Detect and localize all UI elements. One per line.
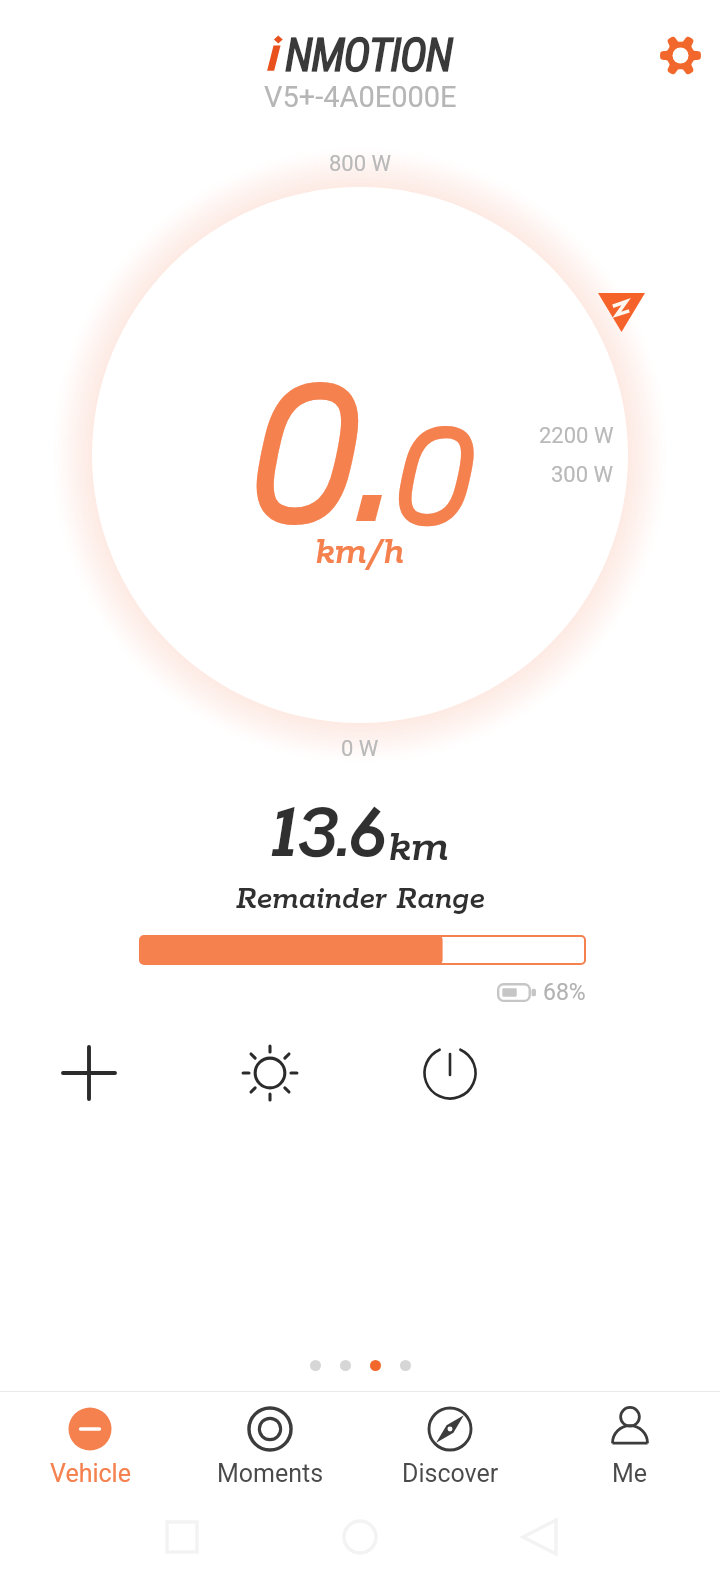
staticText: 68% xyxy=(543,979,586,1006)
button[interactable]: Moments xyxy=(180,1392,360,1500)
button[interactable]: Add vehicle xyxy=(39,1023,139,1123)
staticText: Moments xyxy=(217,1459,324,1488)
staticText: V5+-4A0E000E xyxy=(264,80,457,114)
staticText: 13.6 xyxy=(271,788,388,882)
staticText: Me xyxy=(612,1459,648,1488)
button[interactable]: Me xyxy=(540,1392,720,1500)
button[interactable]: Vehicle xyxy=(0,1392,180,1500)
staticText: km xyxy=(388,822,449,875)
staticText: 300 W xyxy=(551,462,614,488)
button[interactable]: Headlight xyxy=(220,1023,320,1123)
staticText: km/h xyxy=(315,530,405,575)
button[interactable]: Discover xyxy=(360,1392,540,1500)
staticText: Discover xyxy=(402,1459,499,1488)
staticText: 0 W xyxy=(341,736,379,762)
staticText: 2200 W xyxy=(539,423,614,449)
staticText: 800 W xyxy=(329,151,392,177)
staticText: 0 xyxy=(250,342,361,567)
staticText: Vehicle xyxy=(50,1459,131,1488)
staticText: NMOTION xyxy=(285,28,452,82)
staticText: Remainder Range xyxy=(236,881,485,919)
button[interactable]: Power xyxy=(400,1023,500,1123)
staticText: 0 xyxy=(394,399,476,557)
button[interactable]: Settings xyxy=(654,29,706,81)
